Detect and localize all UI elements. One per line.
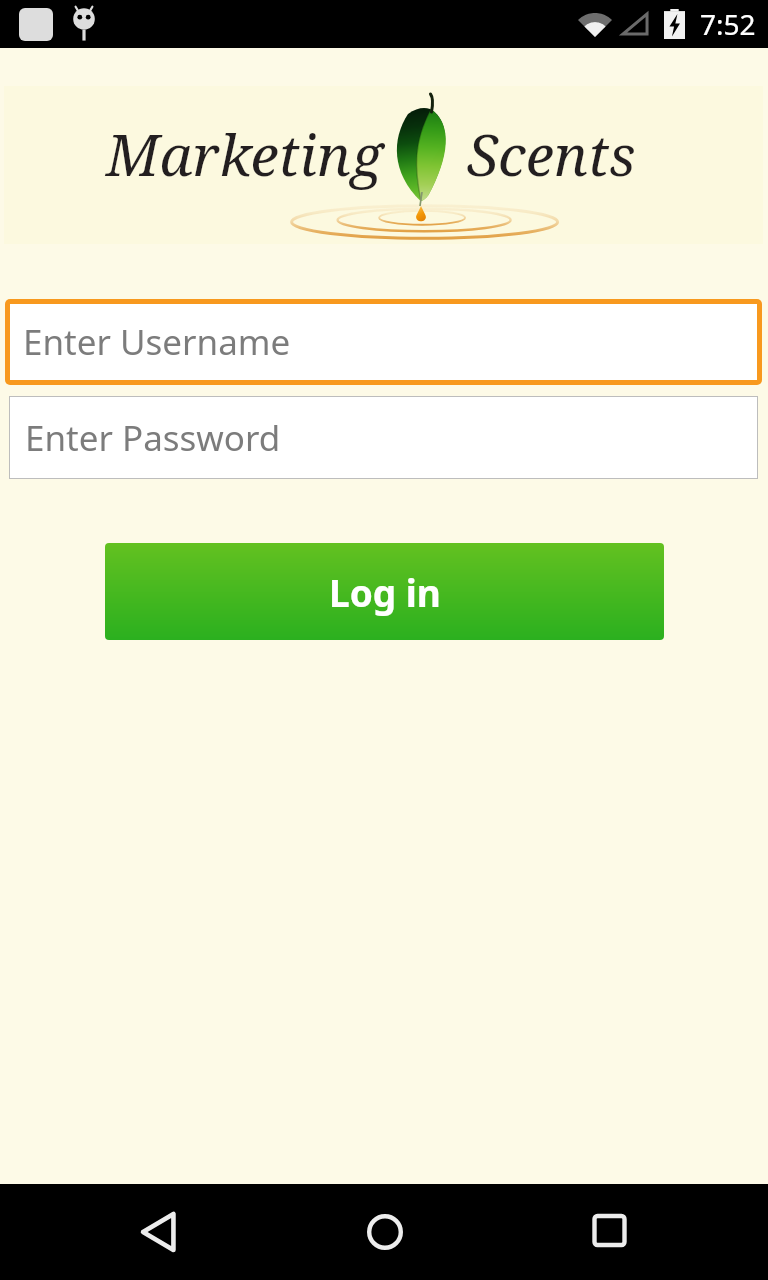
staticText: Marketing: [106, 115, 383, 193]
button[interactable]: Back: [99, 1184, 219, 1280]
staticText: Scents: [467, 115, 636, 193]
button[interactable]: Enter Username: [10, 304, 757, 380]
staticText: Log in: [329, 567, 441, 617]
button[interactable]: Enter Password: [9, 396, 758, 479]
staticText: Enter Password: [25, 414, 281, 462]
button[interactable]: Recents: [551, 1184, 671, 1280]
staticText: 7:52: [700, 5, 756, 43]
button[interactable]: Log in: [105, 543, 664, 640]
button[interactable]: Home: [325, 1184, 445, 1280]
staticText: Enter Username: [23, 318, 291, 366]
